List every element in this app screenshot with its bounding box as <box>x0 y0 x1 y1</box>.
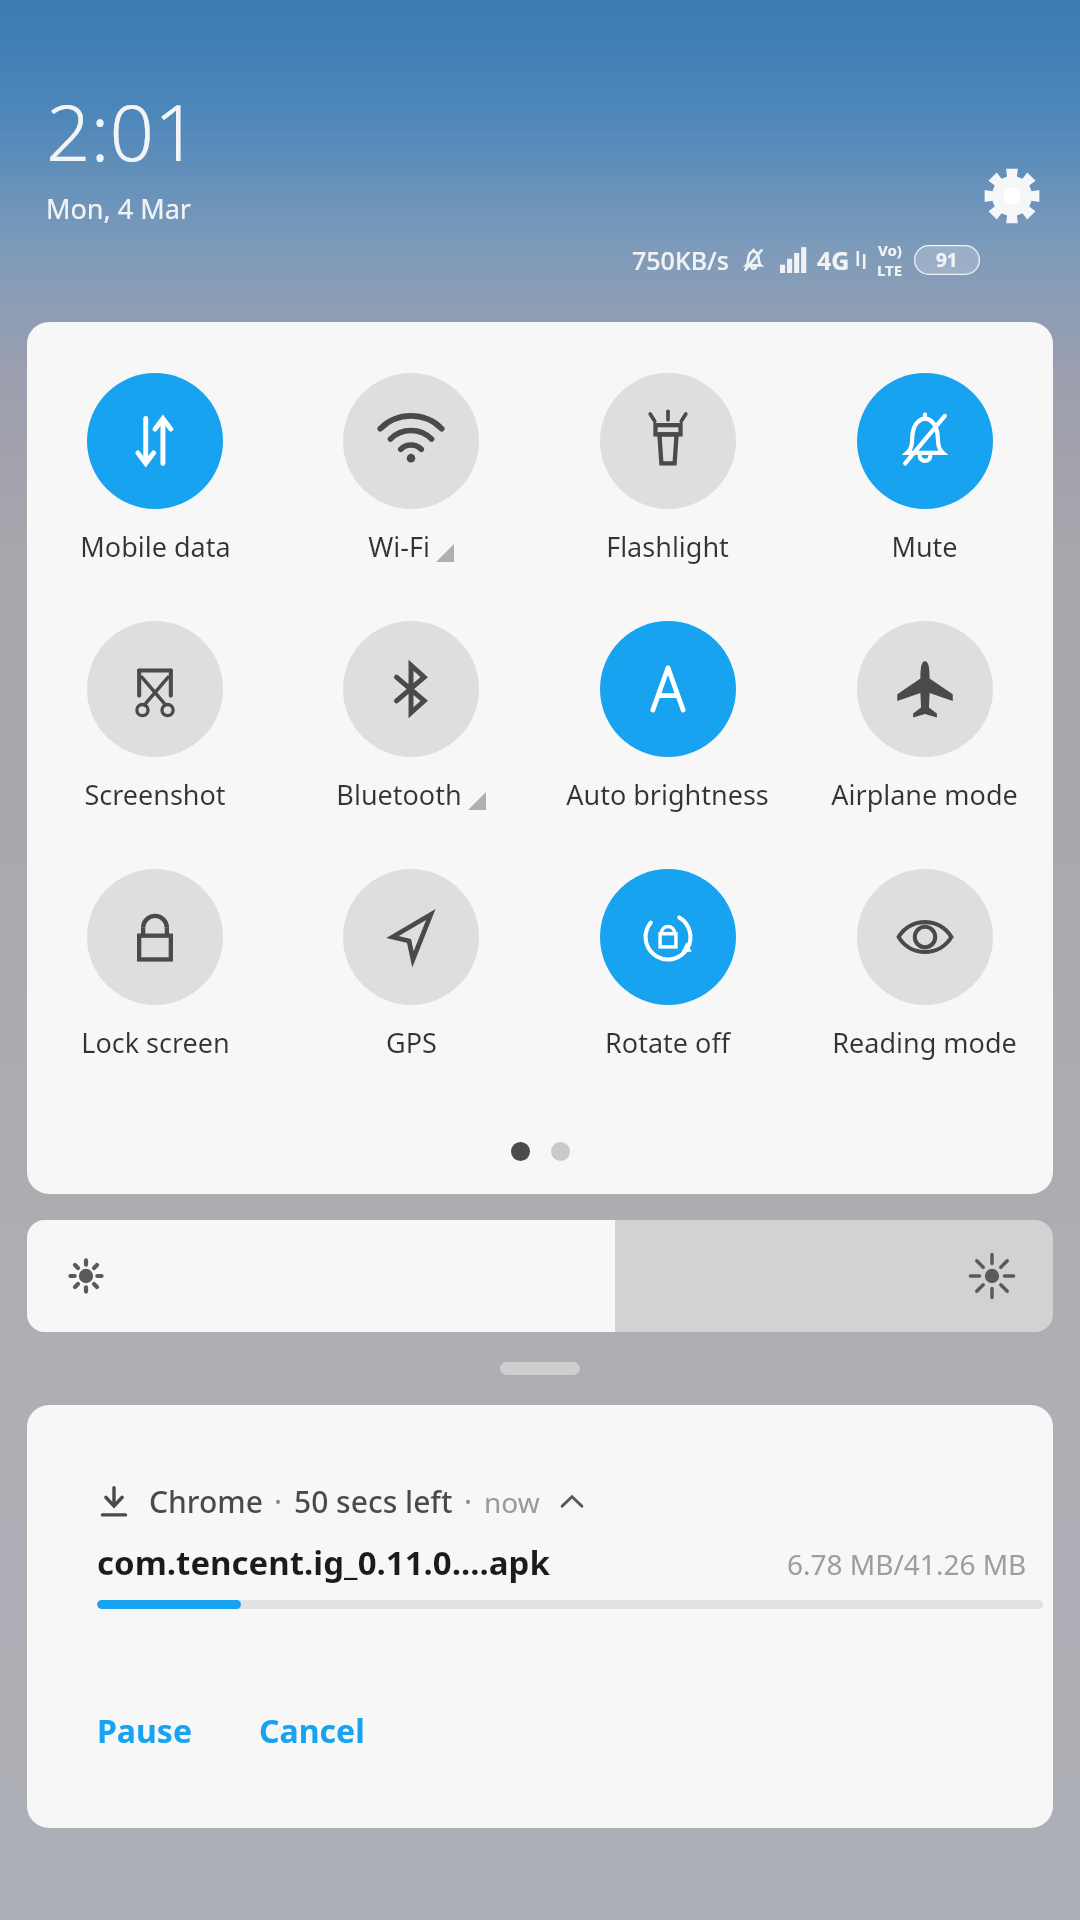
button[interactable]: Settings <box>968 152 1056 240</box>
staticText: Rotate off <box>605 1024 730 1061</box>
button[interactable]: Auto brightness <box>539 617 796 817</box>
button[interactable]: Brightness <box>27 1220 1053 1332</box>
staticText: 91 <box>936 247 958 273</box>
staticText: 4G <box>817 243 850 277</box>
staticText: com.tencent.ig_0.11.0....apk <box>97 1540 550 1585</box>
staticText: Chrome <box>149 1481 263 1522</box>
staticText: Mute <box>891 528 958 565</box>
staticText: · <box>274 1481 283 1522</box>
button[interactable]: Bluetooth <box>283 617 539 817</box>
staticText: Wi-Fi <box>368 528 430 565</box>
button[interactable]: Lock screen <box>27 865 283 1065</box>
button[interactable]: Cancel <box>233 1695 391 1767</box>
button[interactable]: Screenshot <box>27 617 283 817</box>
staticText: Mobile data <box>80 528 231 565</box>
button[interactable]: Airplane mode <box>796 617 1053 817</box>
staticText: Bluetooth <box>336 776 462 813</box>
button[interactable]: Pause <box>71 1695 219 1767</box>
button[interactable]: Mute <box>796 369 1053 569</box>
button[interactable]: Flashlight <box>539 369 796 569</box>
button[interactable]: Reading mode <box>796 865 1053 1065</box>
staticText: 50 secs left <box>294 1481 453 1522</box>
staticText: Pause <box>97 1709 193 1753</box>
staticText: GPS <box>386 1024 437 1061</box>
staticText: 2:01 <box>46 78 199 184</box>
staticText: LTE <box>877 260 903 280</box>
button[interactable]: Collapse <box>554 1484 590 1520</box>
staticText: Airplane mode <box>831 776 1018 813</box>
staticText: 750KB/s <box>632 243 729 277</box>
staticText: Screenshot <box>84 776 226 813</box>
staticText: 6.78 MB/41.26 MB <box>787 1545 1027 1583</box>
staticText: Vo) <box>878 240 902 260</box>
staticText: Mon, 4 Mar <box>46 190 192 227</box>
staticText: Reading mode <box>832 1024 1017 1061</box>
staticText: Auto brightness <box>566 776 769 813</box>
button[interactable]: GPS <box>283 865 539 1065</box>
staticText: Cancel <box>259 1709 365 1753</box>
staticText: · <box>464 1481 473 1522</box>
button[interactable]: Wi-Fi <box>283 369 539 569</box>
staticText: Lock screen <box>81 1024 230 1061</box>
button[interactable]: Mobile data <box>27 369 283 569</box>
button[interactable]: Rotate off <box>539 865 796 1065</box>
staticText: Flashlight <box>606 528 729 565</box>
staticText: now <box>484 1483 540 1521</box>
